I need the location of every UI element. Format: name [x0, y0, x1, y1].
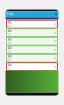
staticText: Ab [8, 46, 12, 50]
staticText: cd [8, 24, 11, 28]
staticText: xx [54, 56, 56, 60]
staticText: xx [54, 31, 56, 34]
staticText: Ab [8, 21, 12, 24]
staticText: xx [54, 48, 56, 51]
staticText: Ab [8, 55, 12, 58]
staticText: Ab [8, 63, 12, 67]
staticText: 9:41 [7, 9, 10, 11]
staticText: ••• [54, 9, 57, 11]
staticText: xx [54, 39, 56, 43]
staticText: cd [8, 58, 11, 62]
staticText: xx [54, 22, 56, 26]
staticText: cd [8, 41, 11, 45]
staticText: Title [7, 12, 14, 16]
staticText: cd [8, 67, 11, 70]
staticText: Ab [8, 38, 12, 41]
staticText: Ab [8, 29, 12, 33]
staticText: cd [8, 50, 11, 53]
staticText: xx [54, 65, 56, 68]
staticText: cd [8, 33, 11, 36]
